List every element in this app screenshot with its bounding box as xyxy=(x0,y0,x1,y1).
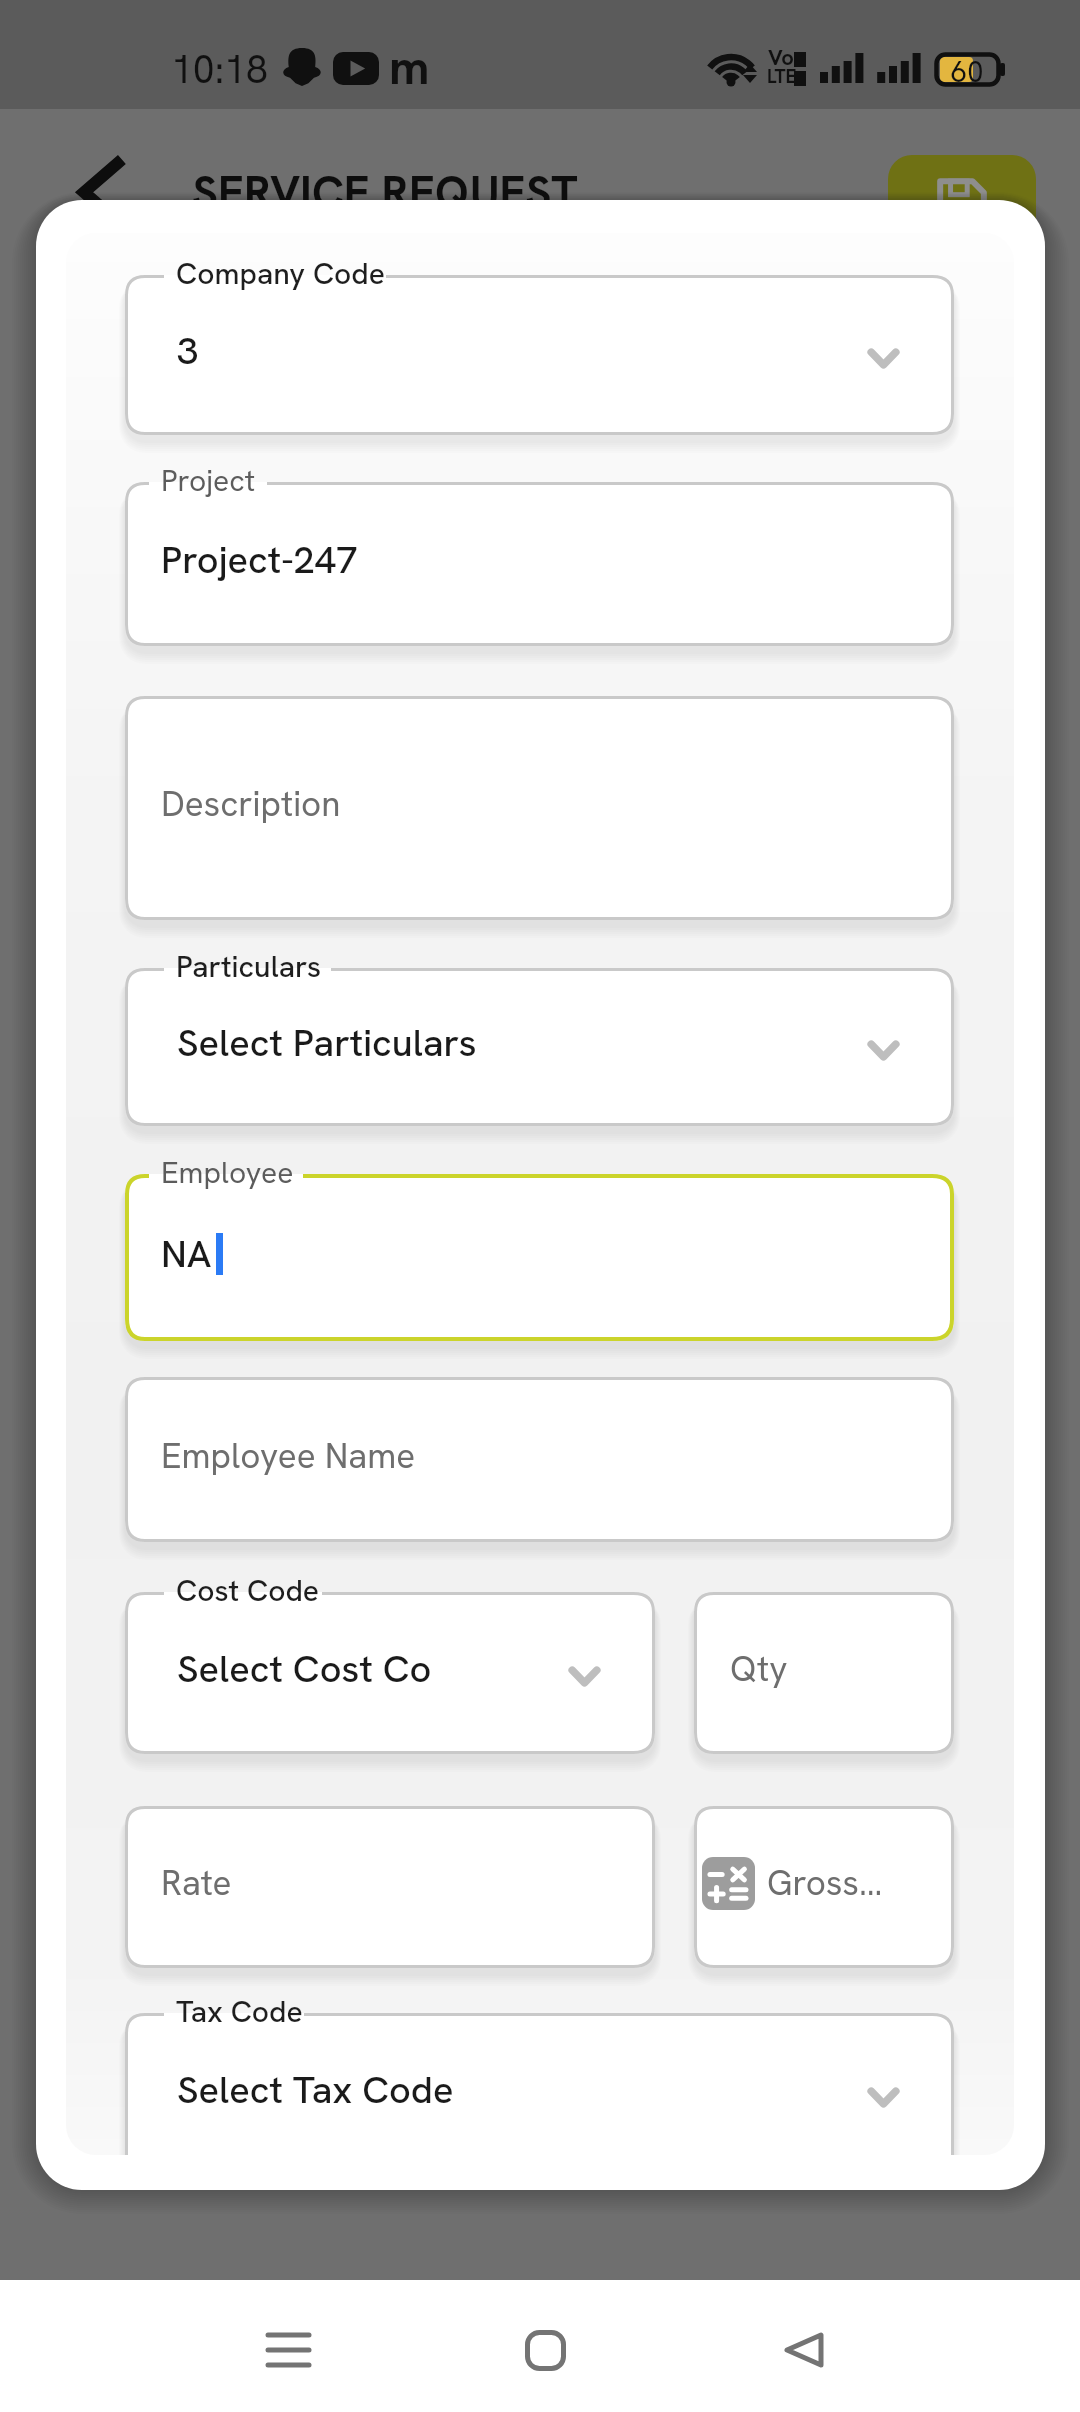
staticText: m xyxy=(389,36,430,99)
staticText: Tax Code xyxy=(176,1992,303,2031)
button[interactable]: Project-247 xyxy=(125,482,954,646)
staticText: LTE xyxy=(767,64,797,89)
staticText: Employee Name xyxy=(161,1433,416,1479)
staticText: 60 xyxy=(951,53,984,91)
button[interactable]: Save xyxy=(888,155,1036,251)
staticText: Cost Code xyxy=(176,1571,320,1610)
staticText: Select Tax Code xyxy=(177,2065,454,2115)
staticText: Particulars xyxy=(176,947,322,986)
button[interactable]: Select Tax Code xyxy=(125,2013,954,2155)
button[interactable]: Back xyxy=(70,157,134,221)
staticText: NA xyxy=(161,1229,212,1279)
staticText: Vo xyxy=(768,43,794,72)
button[interactable]: Select Particulars xyxy=(125,968,954,1126)
staticText: 10:18 xyxy=(171,44,268,95)
staticText: Rate xyxy=(161,1860,232,1906)
button[interactable]: Home xyxy=(490,2295,600,2405)
button[interactable]: Employee Name xyxy=(125,1377,954,1542)
staticText: Company Code xyxy=(176,254,386,293)
button[interactable]: Back xyxy=(749,2295,859,2405)
button[interactable]: Gross… xyxy=(694,1806,954,1968)
staticText: Description xyxy=(161,781,341,827)
staticText: Gross… xyxy=(767,1860,883,1906)
button[interactable]: Qty xyxy=(694,1592,954,1754)
staticText: 3 xyxy=(177,326,199,376)
button[interactable]: NA xyxy=(125,1174,954,1341)
staticText: Select Particulars xyxy=(177,1018,477,1068)
button[interactable]: 3 xyxy=(125,275,954,435)
staticText: SERVICE REQUEST xyxy=(192,163,578,222)
staticText: Qty xyxy=(730,1646,788,1692)
staticText: Select Cost Co xyxy=(177,1644,432,1694)
staticText: Project xyxy=(161,461,256,500)
staticText: Employee xyxy=(161,1153,294,1192)
button[interactable]: Description xyxy=(125,696,954,920)
staticText: Project-247 xyxy=(161,535,358,585)
button[interactable]: Rate xyxy=(125,1806,655,1968)
button[interactable]: Recent apps xyxy=(233,2295,343,2405)
button[interactable]: Select Cost Co xyxy=(125,1592,655,1754)
